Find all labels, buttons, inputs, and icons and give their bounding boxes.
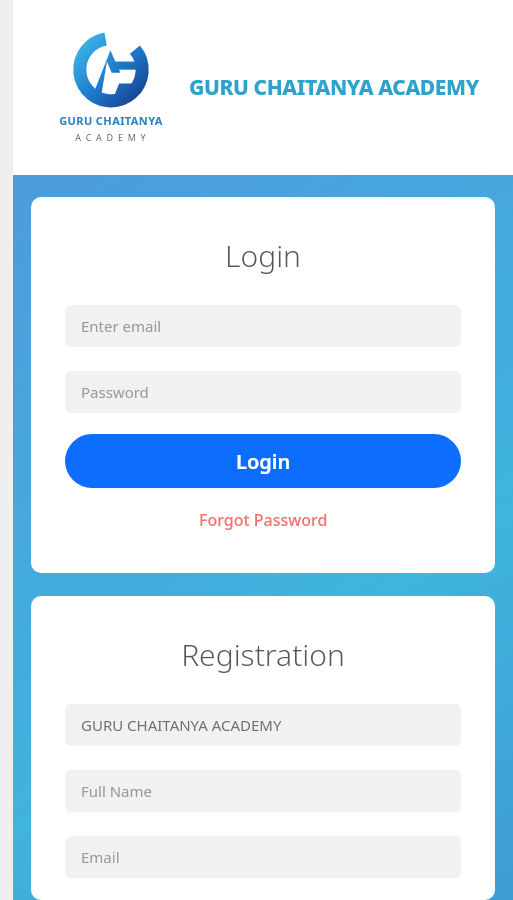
staticText: Login	[65, 235, 461, 276]
staticText: GURU CHAITANYA ACADEMY	[189, 73, 479, 102]
button[interactable]: Full Name	[65, 770, 461, 812]
staticText: Login	[236, 448, 291, 475]
staticText: A C A D E M Y	[75, 131, 147, 143]
staticText: Email	[81, 847, 120, 867]
staticText: Forgot Password	[199, 509, 328, 531]
staticText: Full Name	[81, 781, 152, 801]
button[interactable]: GURU CHAITANYA ACADEMY	[65, 704, 461, 746]
button[interactable]: Password	[65, 371, 461, 413]
button[interactable]: Forgot Password	[65, 509, 461, 531]
staticText: Password	[81, 382, 149, 402]
staticText: GURU CHAITANYA	[59, 113, 163, 128]
staticText: Registration	[65, 634, 461, 675]
button[interactable]: Enter email	[65, 305, 461, 347]
button[interactable]: Email	[65, 836, 461, 878]
staticText: Enter email	[81, 316, 162, 336]
staticText: GURU CHAITANYA ACADEMY	[81, 715, 282, 735]
button[interactable]: Login	[65, 434, 461, 488]
